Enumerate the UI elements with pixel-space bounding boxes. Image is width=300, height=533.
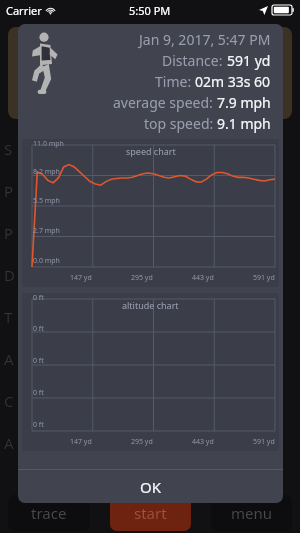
staticText: 147 yd — [70, 273, 92, 283]
staticText: S — [4, 139, 13, 159]
staticText: P — [4, 223, 14, 243]
staticText: 147 yd — [70, 437, 92, 447]
button[interactable]: start — [110, 495, 191, 531]
staticText: 443 yd — [192, 437, 214, 447]
staticText: A — [4, 433, 14, 453]
staticText: Distance: — [162, 51, 227, 70]
staticText: 295 yd — [131, 273, 153, 283]
staticText: top speed: — [144, 114, 217, 133]
staticText: C — [4, 391, 14, 411]
staticText: Jan 9, 2017, 5:47 PM — [139, 30, 271, 49]
button[interactable]: OK — [18, 470, 283, 503]
staticText: 0 ft — [33, 388, 44, 398]
staticText: 591 yd — [227, 51, 271, 70]
staticText: 11.0 mph — [33, 139, 64, 149]
staticText: 0 ft — [33, 293, 44, 303]
staticText: average speed: — [113, 93, 217, 112]
staticText: 0 ft — [33, 420, 44, 430]
staticText: 8.2 mph — [33, 167, 60, 177]
staticText: 9.1 mph — [217, 114, 271, 133]
button[interactable]: trace — [8, 495, 90, 531]
staticText: A — [4, 349, 14, 369]
staticText: OK — [140, 477, 162, 497]
staticText: P — [4, 181, 14, 201]
button[interactable]: menu — [211, 495, 292, 531]
staticText: speed chart — [126, 145, 176, 157]
staticText: 5.5 mph — [33, 196, 60, 206]
staticText: trace — [31, 503, 67, 523]
staticText: 295 yd — [131, 437, 153, 447]
staticText: T — [4, 307, 13, 327]
staticText: 591 yd — [253, 273, 275, 283]
staticText: menu — [231, 503, 273, 523]
staticText: Time: — [155, 72, 195, 91]
staticText: 7.9 mph — [217, 93, 271, 112]
staticText: 591 yd — [253, 437, 275, 447]
staticText: 0 ft — [33, 356, 44, 366]
staticText: Carrier — [6, 3, 42, 18]
staticText: 02m 33s 60 — [195, 72, 271, 91]
staticText: 443 yd — [192, 273, 214, 283]
staticText: 5:50 PM — [129, 3, 171, 18]
staticText: start — [134, 503, 167, 523]
staticText: 2.7 mph — [33, 226, 60, 236]
staticText: 0 ft — [33, 324, 44, 334]
staticText: altitude chart — [122, 299, 179, 311]
staticText: D — [4, 265, 15, 285]
staticText: 0.0 mph — [33, 256, 60, 266]
